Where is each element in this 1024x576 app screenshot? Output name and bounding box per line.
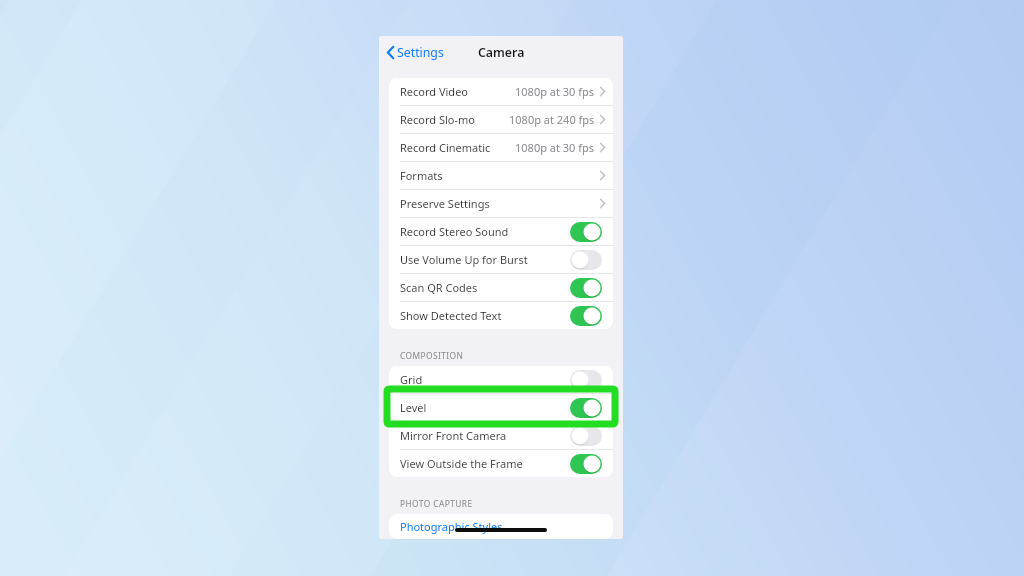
- staticText: Photographic Styles: [400, 519, 503, 534]
- staticText: Scan QR Codes: [400, 280, 478, 295]
- button[interactable]: Show Detected Text toggle: [570, 306, 602, 326]
- button[interactable]: Settings: [385, 39, 446, 66]
- staticText: View Outside the Frame: [400, 456, 523, 471]
- staticText: Mirror Front Camera: [400, 428, 507, 443]
- staticText: Show Detected Text: [400, 308, 502, 323]
- staticText: Record Cinematic: [400, 140, 491, 155]
- button[interactable]: Preserve Settings: [389, 190, 613, 217]
- button[interactable]: Mirror Front Camera: [389, 422, 613, 449]
- button[interactable]: Show Detected Text: [389, 302, 613, 329]
- staticText: COMPOSITION: [400, 350, 464, 361]
- button[interactable]: Level: [389, 394, 613, 421]
- staticText: Settings: [397, 44, 444, 61]
- button[interactable]: Record Stereo Sound toggle: [570, 222, 602, 242]
- staticText: Preserve Settings: [400, 196, 490, 211]
- staticText: 1080p at 30 fps: [515, 84, 595, 99]
- staticText: Use Volume Up for Burst: [400, 252, 528, 267]
- staticText: 1080p at 240 fps: [509, 112, 595, 127]
- staticText: Grid: [400, 372, 423, 387]
- staticText: Record Video: [400, 84, 468, 99]
- staticText: Formats: [400, 168, 443, 183]
- button[interactable]: Scan QR Codes toggle: [570, 278, 602, 298]
- button[interactable]: Formats: [389, 162, 613, 189]
- staticText: 1080p at 30 fps: [515, 140, 595, 155]
- button[interactable]: Record Video: [389, 78, 613, 105]
- button[interactable]: Grid toggle: [570, 370, 602, 390]
- button[interactable]: Scan QR Codes: [389, 274, 613, 301]
- button[interactable]: Level toggle: [570, 398, 602, 418]
- staticText: Level: [400, 400, 427, 415]
- button[interactable]: Use Volume Up for Burst toggle: [570, 250, 602, 270]
- button[interactable]: View Outside the Frame toggle: [570, 454, 602, 474]
- button[interactable]: Record Cinematic: [389, 134, 613, 161]
- button[interactable]: Grid: [389, 366, 613, 393]
- staticText: PHOTO CAPTURE: [400, 498, 473, 509]
- staticText: Camera: [478, 44, 525, 61]
- button[interactable]: Record Stereo Sound: [389, 218, 613, 245]
- staticText: Record Stereo Sound: [400, 224, 509, 239]
- staticText: Record Slo-mo: [400, 112, 475, 127]
- button[interactable]: View Outside the Frame: [389, 450, 613, 477]
- button[interactable]: Photographic Styles: [389, 514, 613, 539]
- button[interactable]: Mirror Front Camera toggle: [570, 426, 602, 446]
- button[interactable]: Record Slo-mo: [389, 106, 613, 133]
- button[interactable]: Use Volume Up for Burst: [389, 246, 613, 273]
